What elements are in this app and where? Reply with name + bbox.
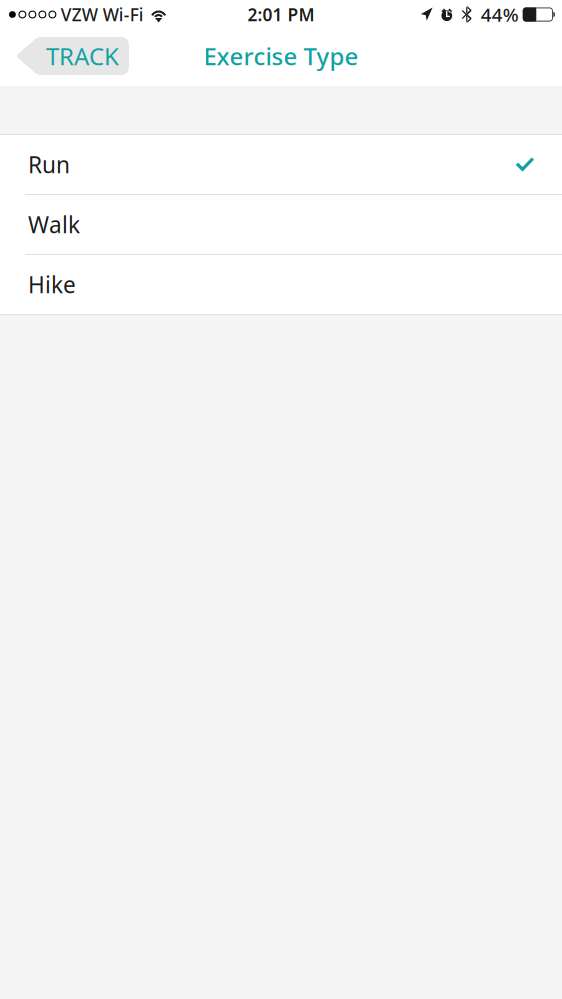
staticText: TRACK bbox=[46, 40, 119, 72]
staticText: 2:01 PM bbox=[247, 3, 314, 26]
staticText: Exercise Type bbox=[203, 40, 358, 72]
button[interactable]: Run bbox=[0, 135, 562, 195]
staticText: Walk bbox=[28, 209, 80, 239]
staticText: 44% bbox=[481, 2, 519, 27]
staticText: Run bbox=[28, 149, 70, 179]
staticText: Hike bbox=[28, 269, 76, 299]
button[interactable]: TRACK bbox=[16, 37, 129, 75]
button[interactable]: Hike bbox=[0, 255, 562, 314]
button[interactable]: Walk bbox=[0, 195, 562, 255]
staticText: VZW Wi-Fi bbox=[61, 3, 144, 26]
